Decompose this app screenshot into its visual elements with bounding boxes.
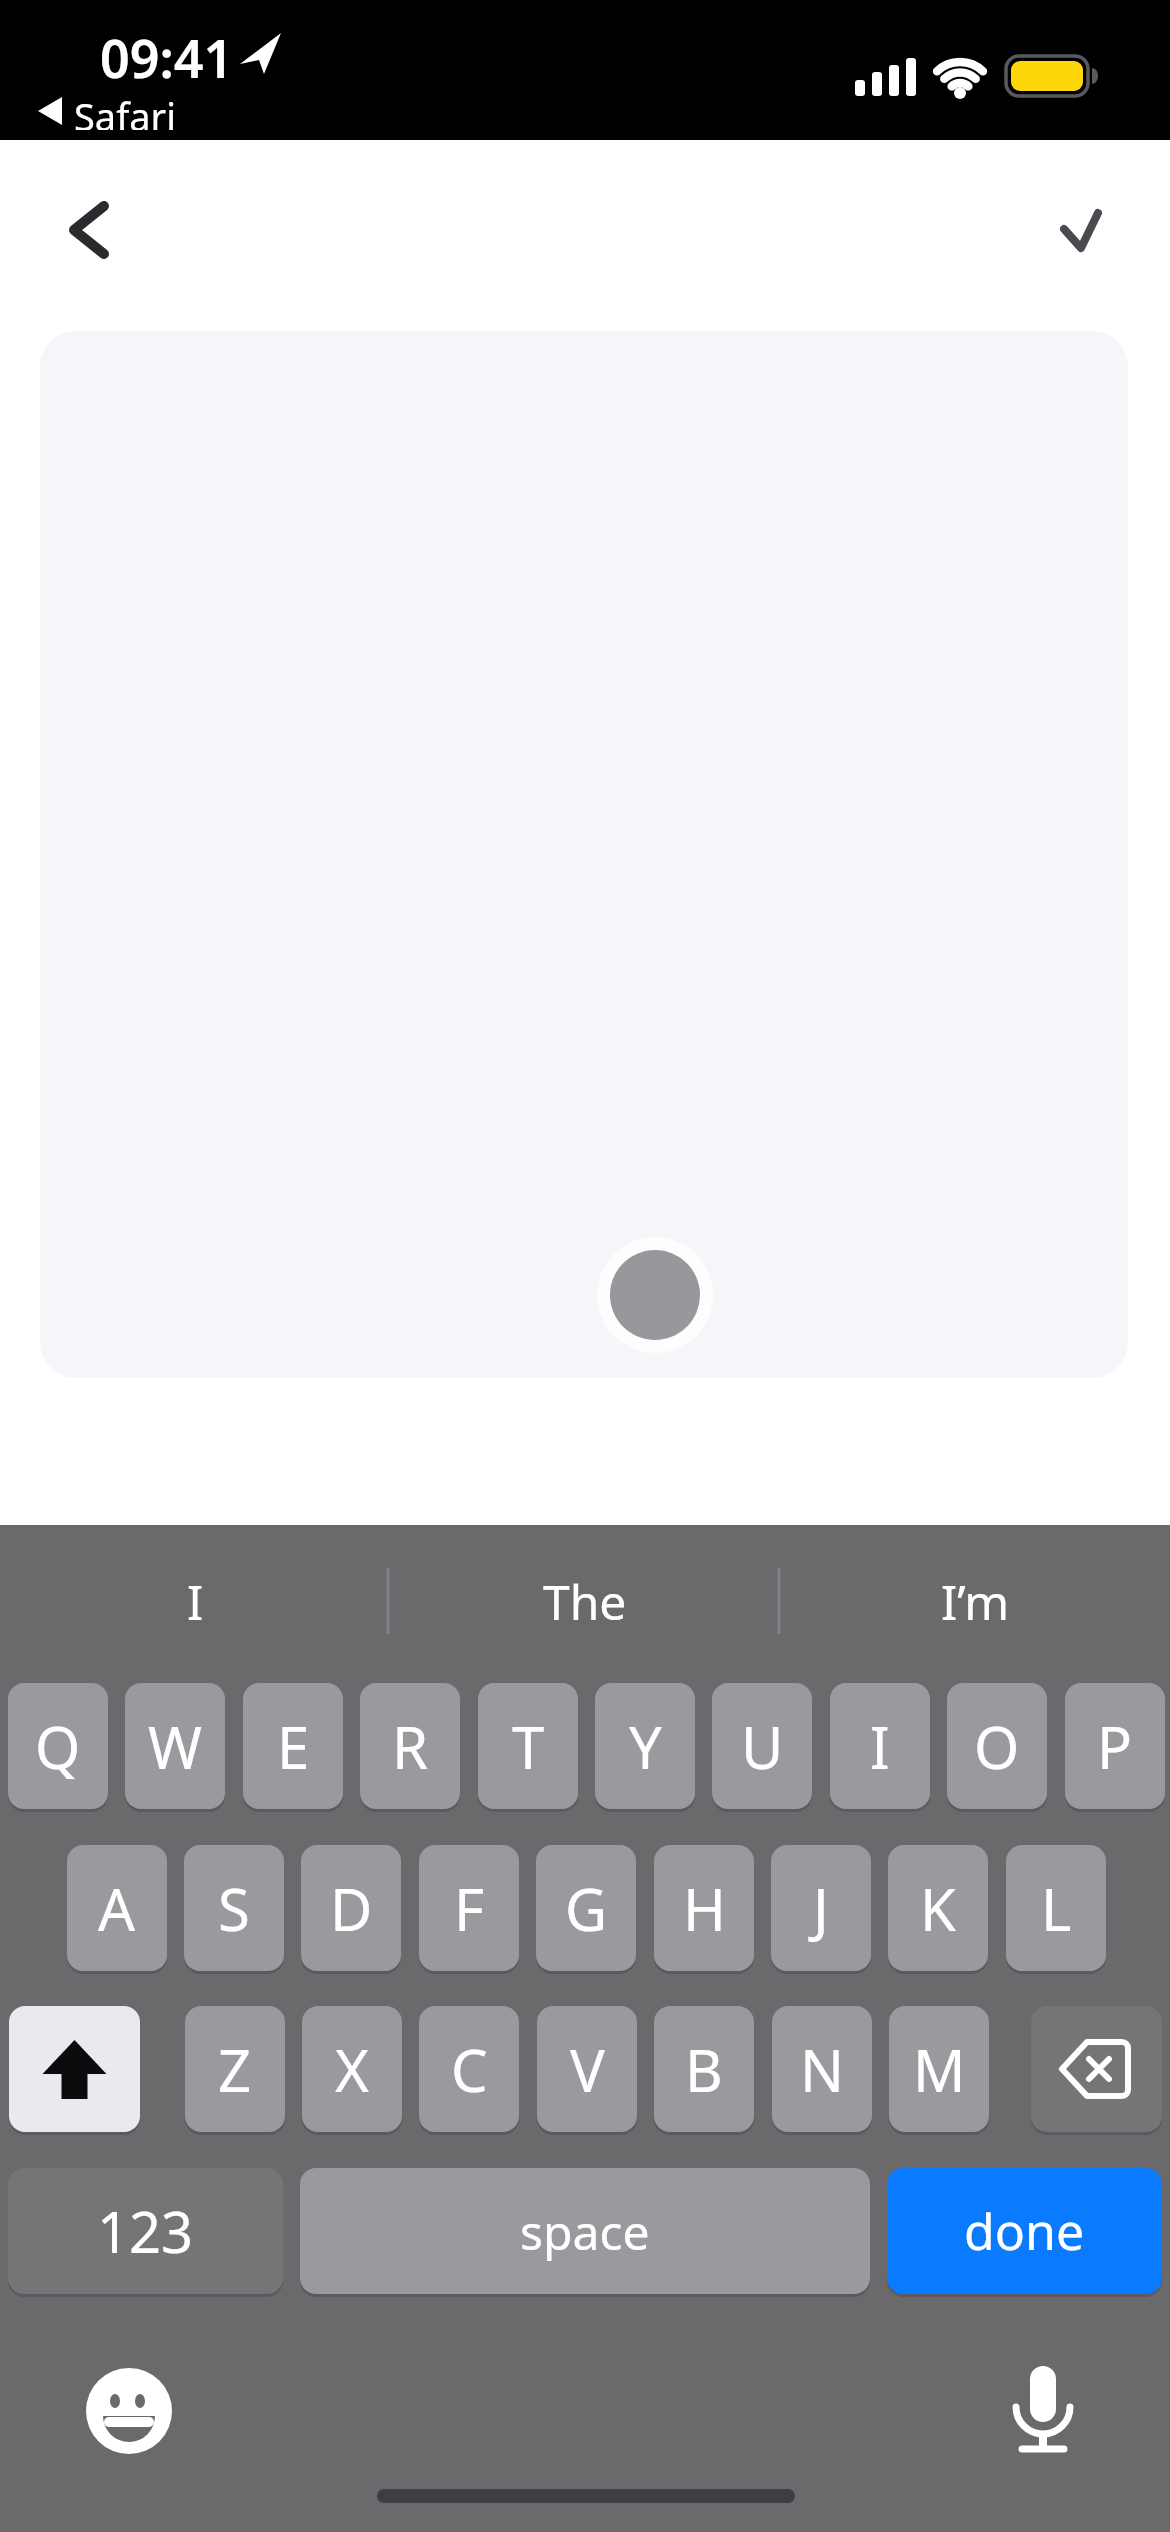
button[interactable]: H (654, 1845, 754, 1971)
button[interactable]: F (419, 1845, 519, 1971)
button[interactable]: P (1065, 1683, 1165, 1809)
staticText: Q (35, 1707, 81, 1786)
staticText: B (685, 2030, 723, 2109)
button[interactable]: S (184, 1845, 284, 1971)
button[interactable]: Y (595, 1683, 695, 1809)
button[interactable]: N (772, 2006, 872, 2132)
staticText: space (520, 2199, 650, 2264)
staticText: D (330, 1869, 373, 1948)
button[interactable]: U (712, 1683, 812, 1809)
button[interactable]: O (947, 1683, 1047, 1809)
staticText: S (218, 1869, 250, 1948)
staticText: T (512, 1707, 545, 1786)
staticText: M (913, 2030, 966, 2109)
button[interactable] (1031, 2006, 1162, 2132)
staticText: I (187, 1569, 204, 1634)
staticText: K (920, 1869, 956, 1948)
button[interactable]: M (889, 2006, 989, 2132)
button[interactable]: I (0, 1562, 390, 1640)
button[interactable]: The (390, 1562, 780, 1640)
staticText: R (392, 1707, 429, 1786)
button[interactable]: X (302, 2006, 402, 2132)
staticText: H (683, 1869, 726, 1948)
staticText: Z (218, 2030, 252, 2109)
staticText: Y (629, 1707, 662, 1786)
staticText: W (148, 1707, 202, 1786)
button[interactable]: done (887, 2168, 1162, 2294)
button[interactable]: V (537, 2006, 637, 2132)
button[interactable]: C (419, 2006, 519, 2132)
button[interactable]: I (830, 1683, 930, 1809)
button[interactable]: L (1006, 1845, 1106, 1971)
staticText: The (543, 1569, 627, 1634)
staticText: A (98, 1869, 136, 1948)
staticText: J (813, 1869, 829, 1948)
staticText: O (974, 1707, 1020, 1786)
staticText: X (335, 2030, 369, 2109)
button[interactable]: I’m (780, 1562, 1170, 1640)
button[interactable]: 123 (8, 2168, 283, 2294)
button[interactable] (44, 190, 124, 270)
button[interactable]: Z (185, 2006, 285, 2132)
button[interactable] (1044, 192, 1120, 268)
staticText: G (565, 1869, 608, 1948)
button[interactable]: T (478, 1683, 578, 1809)
staticText: 123 (97, 2193, 194, 2269)
button[interactable]: W (125, 1683, 225, 1809)
button[interactable] (998, 2360, 1088, 2460)
staticText: I (870, 1707, 890, 1786)
button[interactable]: E (243, 1683, 343, 1809)
button[interactable]: space (300, 2168, 870, 2294)
button[interactable] (84, 2366, 174, 2456)
button[interactable]: Q (8, 1683, 108, 1809)
staticText: U (741, 1707, 784, 1786)
button[interactable] (610, 1250, 700, 1340)
button[interactable]: A (67, 1845, 167, 1971)
staticText: done (964, 2197, 1085, 2265)
button[interactable]: J (771, 1845, 871, 1971)
staticText: L (1041, 1869, 1072, 1948)
button[interactable]: R (360, 1683, 460, 1809)
staticText: P (1097, 1707, 1133, 1786)
staticText: E (277, 1707, 310, 1786)
staticText: N (800, 2030, 845, 2109)
button[interactable]: B (654, 2006, 754, 2132)
staticText: I’m (941, 1569, 1010, 1634)
staticText: Safari (74, 90, 177, 130)
staticText: C (451, 2030, 488, 2109)
staticText: 09:41 (100, 22, 234, 82)
button[interactable]: D (301, 1845, 401, 1971)
button[interactable]: K (888, 1845, 988, 1971)
button[interactable] (9, 2006, 140, 2132)
staticText: V (570, 2030, 605, 2109)
staticText: F (454, 1869, 485, 1948)
button[interactable]: G (536, 1845, 636, 1971)
